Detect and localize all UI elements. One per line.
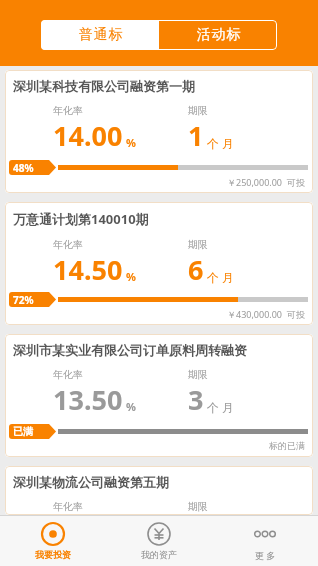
staticText: 深圳市某实业有限公司订单原料周转融资: [13, 342, 247, 358]
staticText: 14.00: [53, 117, 123, 154]
other: 更 多: [253, 522, 277, 546]
button[interactable]: 我要投资: [0, 516, 106, 566]
staticText: 12.80: [53, 513, 123, 515]
staticText: 13.50: [53, 381, 123, 418]
staticText: 个 月: [207, 269, 235, 285]
staticText: ￥430,000.00 可投: [227, 308, 305, 320]
button[interactable]: 我的资产: [106, 516, 212, 566]
staticText: 年化率: [53, 238, 83, 251]
staticText: 4: [188, 513, 204, 515]
staticText: %: [126, 399, 136, 414]
other: 我的资产: [147, 522, 171, 546]
staticText: 期限: [188, 104, 208, 117]
staticText: ￥250,000.00 可投: [227, 176, 305, 188]
staticText: 年化率: [53, 104, 83, 117]
staticText: 已满: [13, 425, 33, 438]
button[interactable]: 更 多: [212, 516, 318, 566]
button[interactable]: 普通标: [41, 20, 159, 50]
staticText: 标的已满: [269, 440, 305, 451]
staticText: 活动标: [196, 26, 241, 44]
button[interactable]: 万意通计划第140010期: [5, 202, 313, 325]
staticText: 期限: [188, 500, 208, 513]
staticText: 48%: [13, 161, 34, 175]
staticText: 普通标: [78, 26, 123, 44]
staticText: 个 月: [207, 399, 235, 415]
other: 我要投资: [41, 522, 65, 546]
staticText: 1: [188, 117, 204, 154]
staticText: 深圳某科技有限公司融资第一期: [13, 78, 195, 94]
staticText: 期限: [188, 368, 208, 381]
staticText: 我的资产: [141, 549, 177, 560]
staticText: 个 月: [207, 135, 235, 151]
staticText: 6: [188, 251, 204, 288]
staticText: 14.50: [53, 251, 123, 288]
button[interactable]: 活动标: [159, 20, 277, 50]
staticText: 深圳某物流公司融资第五期: [13, 474, 169, 490]
staticText: %: [126, 269, 136, 284]
staticText: 年化率: [53, 368, 83, 381]
staticText: 期限: [188, 238, 208, 251]
button[interactable]: 深圳某科技有限公司融资第一期: [5, 70, 313, 193]
staticText: 72%: [13, 293, 34, 307]
staticText: 更 多: [255, 549, 276, 561]
staticText: 3: [188, 381, 204, 418]
button[interactable]: 深圳市某实业有限公司订单原料周转融资: [5, 334, 313, 457]
staticText: %: [126, 135, 136, 150]
staticText: 万意通计划第140010期: [13, 210, 149, 228]
staticText: 年化率: [53, 500, 83, 513]
button[interactable]: 深圳某物流公司融资第五期: [5, 466, 313, 515]
staticText: 我要投资: [35, 549, 71, 560]
